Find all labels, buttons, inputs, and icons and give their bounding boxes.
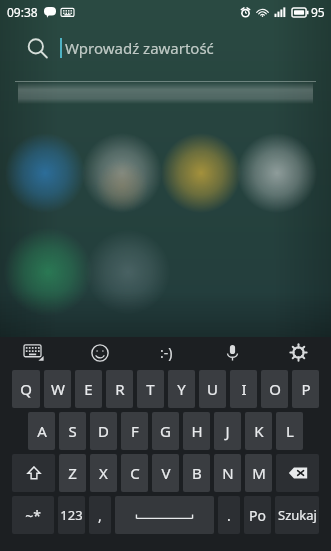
button[interactable]: ~* — [12, 496, 54, 534]
button[interactable]: T — [137, 370, 164, 408]
button[interactable]: S — [59, 412, 86, 450]
button[interactable]: C — [121, 454, 148, 492]
button[interactable]: , — [89, 496, 111, 534]
staticText: Z — [68, 463, 77, 483]
button[interactable]: Space — [115, 496, 214, 534]
button[interactable]: N — [214, 454, 241, 492]
staticText: Wprowadź zawartość — [65, 38, 214, 58]
staticText: Szukaj — [278, 506, 317, 524]
button[interactable]: H — [183, 412, 210, 450]
other: Search — [24, 35, 50, 61]
button[interactable]: Settings — [265, 337, 331, 368]
staticText: W — [51, 379, 65, 399]
staticText: X — [99, 463, 108, 483]
staticText: R — [115, 379, 125, 399]
staticText: A — [37, 421, 47, 441]
staticText: D — [98, 421, 109, 441]
staticText: S — [68, 421, 77, 441]
button[interactable]: L — [276, 412, 303, 450]
staticText: ~* — [25, 506, 41, 525]
button[interactable]: P — [292, 370, 319, 408]
staticText: L — [286, 421, 294, 441]
staticText: . — [227, 506, 231, 525]
button[interactable]: Po — [244, 496, 271, 534]
staticText: V — [161, 463, 171, 483]
staticText: K — [254, 421, 264, 441]
button[interactable]: . — [218, 496, 240, 534]
staticText: U — [207, 379, 218, 399]
button[interactable]: X — [90, 454, 117, 492]
staticText: B — [192, 463, 202, 483]
button[interactable]: U — [199, 370, 226, 408]
button[interactable]: D — [90, 412, 117, 450]
staticText: N — [222, 463, 234, 483]
staticText: E — [84, 379, 93, 399]
button[interactable]: V — [152, 454, 179, 492]
staticText: H — [191, 421, 203, 441]
button[interactable]: Voice input — [199, 337, 265, 368]
button[interactable]: Backspace — [276, 454, 319, 492]
staticText: J — [225, 421, 230, 441]
staticText: Q — [20, 379, 32, 399]
staticText: , — [98, 506, 102, 525]
staticText: G — [160, 421, 171, 441]
button[interactable]: F — [121, 412, 148, 450]
button[interactable]: A — [28, 412, 55, 450]
button[interactable]: O — [261, 370, 288, 408]
button[interactable]: I — [230, 370, 257, 408]
button[interactable]: K — [245, 412, 272, 450]
button[interactable]: Search — [0, 35, 331, 61]
button[interactable]: Emoji — [67, 337, 133, 368]
staticText: :-) — [160, 343, 173, 362]
button[interactable]: Change keyboard — [0, 337, 67, 368]
staticText: 09:38 — [7, 4, 38, 20]
button[interactable]: G — [152, 412, 179, 450]
button[interactable]: J — [214, 412, 241, 450]
staticText: F — [131, 421, 139, 441]
staticText: T — [146, 379, 155, 399]
button[interactable]: E — [75, 370, 102, 408]
button[interactable]: M — [245, 454, 272, 492]
staticText: C — [130, 463, 140, 483]
staticText: Po — [249, 506, 266, 525]
staticText: 95 — [311, 4, 325, 20]
staticText: P — [301, 379, 311, 399]
staticText: 123 — [60, 506, 83, 524]
staticText: I — [241, 379, 247, 399]
button[interactable]: W — [44, 370, 71, 408]
button[interactable]: Q — [12, 370, 40, 408]
button[interactable]: Szukaj — [275, 496, 319, 534]
staticText: O — [269, 379, 281, 399]
staticText: Y — [177, 379, 186, 399]
button[interactable]: B — [183, 454, 210, 492]
button[interactable]: Emoticons — [133, 337, 199, 368]
button[interactable]: Z — [59, 454, 86, 492]
staticText: M — [252, 463, 266, 483]
button[interactable]: 123 — [58, 496, 85, 534]
button[interactable]: Shift — [12, 454, 55, 492]
button[interactable]: Y — [168, 370, 195, 408]
button[interactable]: R — [106, 370, 133, 408]
